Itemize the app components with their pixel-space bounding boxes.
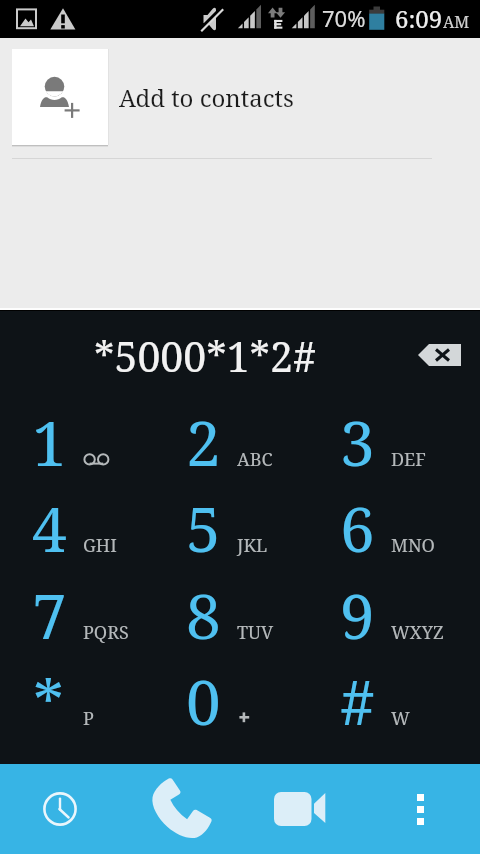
staticText: 4 [32,486,67,566]
staticText: TUV [237,620,274,645]
staticText: DEF [391,447,426,472]
button[interactable]: 7 PQRS [0,582,160,668]
button[interactable]: More options [360,764,480,854]
staticText: # [340,659,375,739]
staticText: PQRS [83,620,129,645]
staticText: 6 [340,486,375,566]
button[interactable]: 8 TUV [160,582,320,668]
button[interactable]: 9 WXYZ [320,582,480,668]
staticText: 0 [186,659,221,739]
staticText: 3 [340,400,375,480]
staticText: MNO [391,533,435,558]
staticText: AM [443,11,470,33]
button[interactable]: 3 DEF [320,409,480,495]
staticText: 5 [186,486,221,566]
staticText: *5000*1*2# [94,328,316,384]
staticText: 9 [340,573,375,653]
button[interactable]: 2 ABC [160,409,320,495]
staticText: * [33,659,65,739]
staticText: JKL [237,533,268,558]
staticText: 8 [186,573,221,653]
button[interactable]: 4 GHI [0,495,160,581]
button[interactable]: 0 plus [160,668,320,754]
staticText: Add to contacts [119,81,294,114]
button[interactable]: Recents [0,764,120,854]
button[interactable]: # W [320,668,480,754]
staticText: 7 [32,573,67,653]
staticText: W [391,706,410,731]
staticText: 1 [32,400,67,480]
staticText: P [83,706,94,731]
staticText: ABC [237,447,273,472]
button[interactable]: 6 MNO [320,495,480,581]
button[interactable]: Dialpad [120,764,240,854]
staticText: 2 [186,400,221,480]
staticText: 6:09 [395,2,443,35]
button[interactable]: * P [0,668,160,754]
staticText: GHI [83,533,117,558]
staticText: WXYZ [391,620,444,645]
button[interactable] [0,49,480,145]
staticText: 70% [322,3,366,33]
button[interactable]: 1 voicemail [0,409,160,495]
button[interactable]: Video call [240,764,360,854]
button[interactable]: Backspace [409,325,469,385]
button[interactable]: 5 JKL [160,495,320,581]
